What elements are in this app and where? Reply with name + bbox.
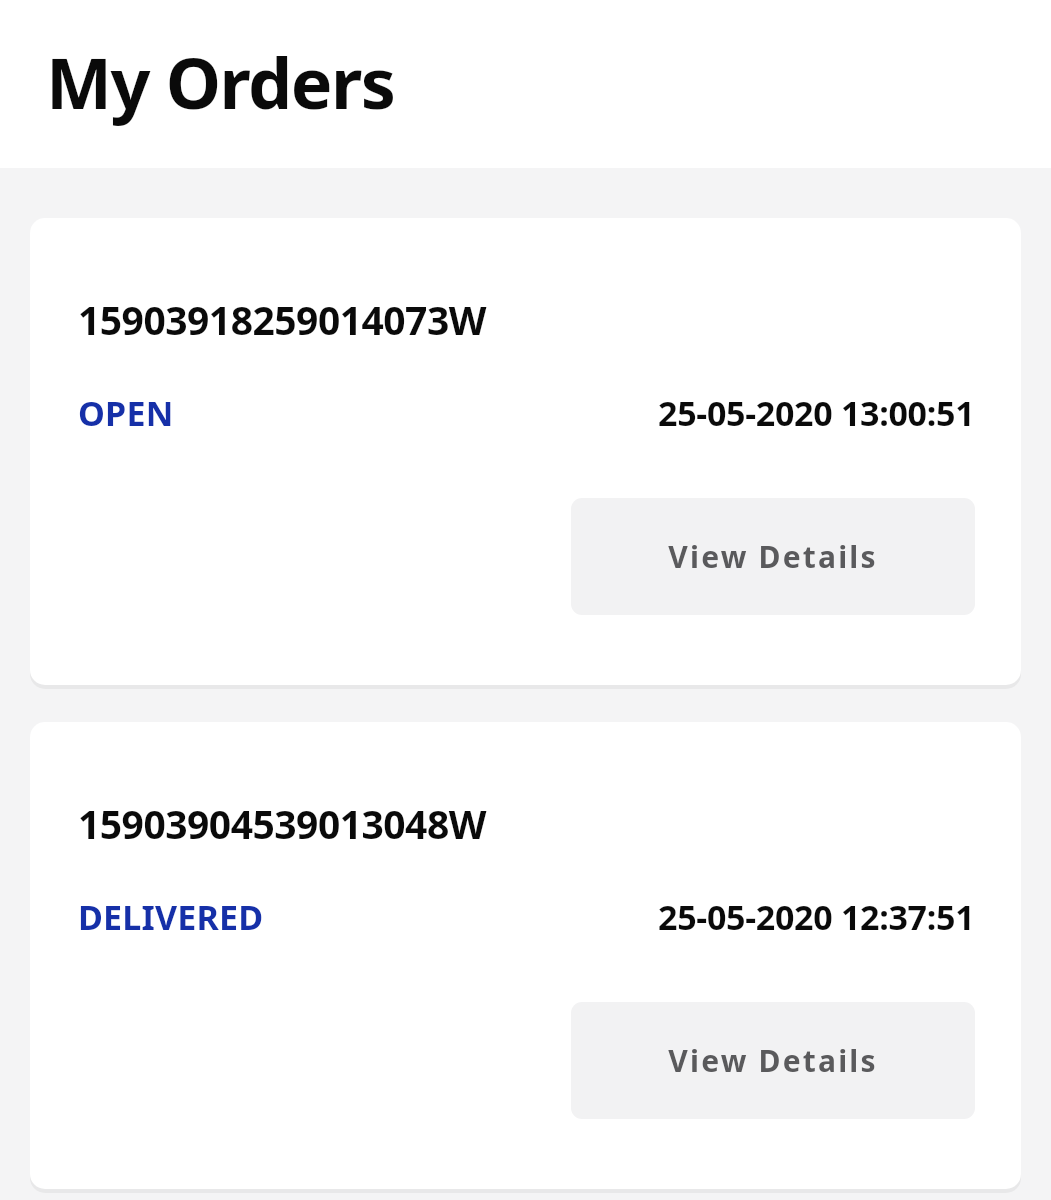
button[interactable]: View Details [571, 498, 975, 615]
staticText: View Details [668, 536, 878, 577]
staticText: 15903904539013048W [78, 797, 486, 850]
staticText: 15903918259014073W [78, 293, 486, 346]
button[interactable]: 15903918259014073W [30, 218, 1021, 685]
button[interactable]: 15903904539013048W [30, 722, 1021, 1189]
staticText: My Orders [46, 34, 395, 129]
staticText: View Details [668, 1040, 878, 1081]
staticText: DELIVERED [78, 894, 264, 940]
button[interactable]: View Details [571, 1002, 975, 1119]
staticText: 25-05-2020 12:37:51 [658, 894, 975, 940]
staticText: 25-05-2020 13:00:51 [658, 390, 975, 436]
staticText: OPEN [78, 390, 174, 436]
